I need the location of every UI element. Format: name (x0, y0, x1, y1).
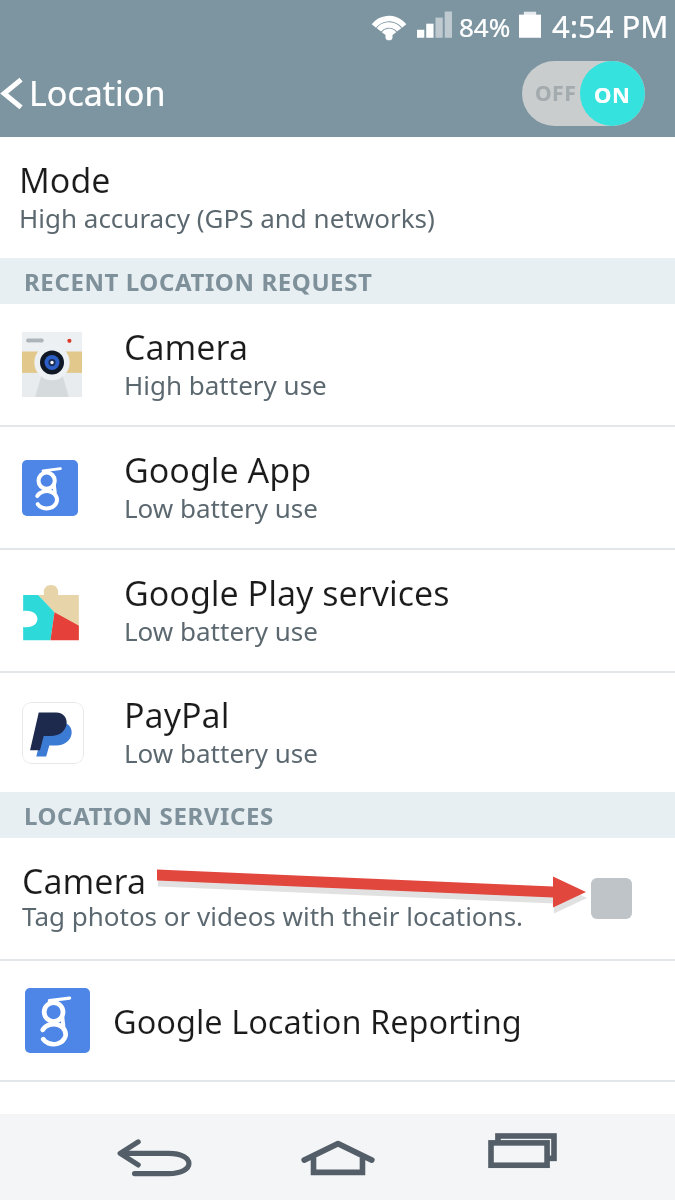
staticText: Mode (19, 157, 111, 203)
staticText: PayPal (124, 692, 230, 738)
staticText: Low battery use (124, 613, 318, 648)
button[interactable]: OFF (522, 61, 645, 126)
button[interactable]: Back (94, 1114, 214, 1200)
button[interactable]: Recent apps (462, 1114, 582, 1200)
button[interactable]: Mode (0, 137, 675, 258)
button[interactable]: Google Play services (0, 550, 675, 671)
staticText: ON (594, 79, 631, 109)
staticText: High battery use (124, 367, 327, 402)
staticText: Google Play services (124, 570, 450, 616)
staticText: LOCATION SERVICES (24, 799, 274, 832)
button[interactable]: Google Location Reporting (0, 961, 675, 1080)
staticText: Camera (22, 858, 146, 904)
staticText: Low battery use (124, 490, 318, 525)
staticText: 4:54 PM (552, 5, 669, 47)
staticText: Google Location Reporting (113, 999, 522, 1043)
button[interactable]: Camera (0, 304, 675, 425)
button[interactable]: Camera location tagging checkbox (591, 878, 632, 919)
button[interactable]: Google App (0, 427, 675, 548)
staticText: Location (29, 70, 166, 116)
staticText: Tag photos or videos with their location… (22, 898, 524, 933)
staticText: 84% (459, 9, 511, 44)
staticText: Camera (124, 324, 248, 370)
staticText: RECENT LOCATION REQUEST (24, 265, 373, 298)
staticText: Google App (124, 447, 312, 493)
staticText: High accuracy (GPS and networks) (19, 200, 435, 235)
button[interactable]: Location (0, 54, 172, 132)
staticText: Low battery use (124, 735, 318, 770)
button[interactable]: Home (278, 1114, 398, 1200)
button[interactable]: PayPal (0, 673, 675, 792)
staticText: OFF (535, 79, 577, 108)
button[interactable]: Camera (0, 838, 675, 959)
